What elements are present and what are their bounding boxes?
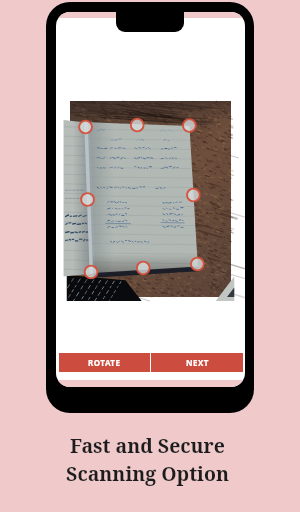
button[interactable]: NEXT bbox=[151, 353, 243, 372]
button[interactable]: ROTATE bbox=[59, 353, 150, 372]
staticText: ROTATE bbox=[88, 357, 121, 368]
staticText: NEXT bbox=[186, 357, 209, 368]
staticText: Fast and Secure bbox=[70, 432, 225, 459]
staticText: Scanning Option bbox=[66, 460, 229, 487]
